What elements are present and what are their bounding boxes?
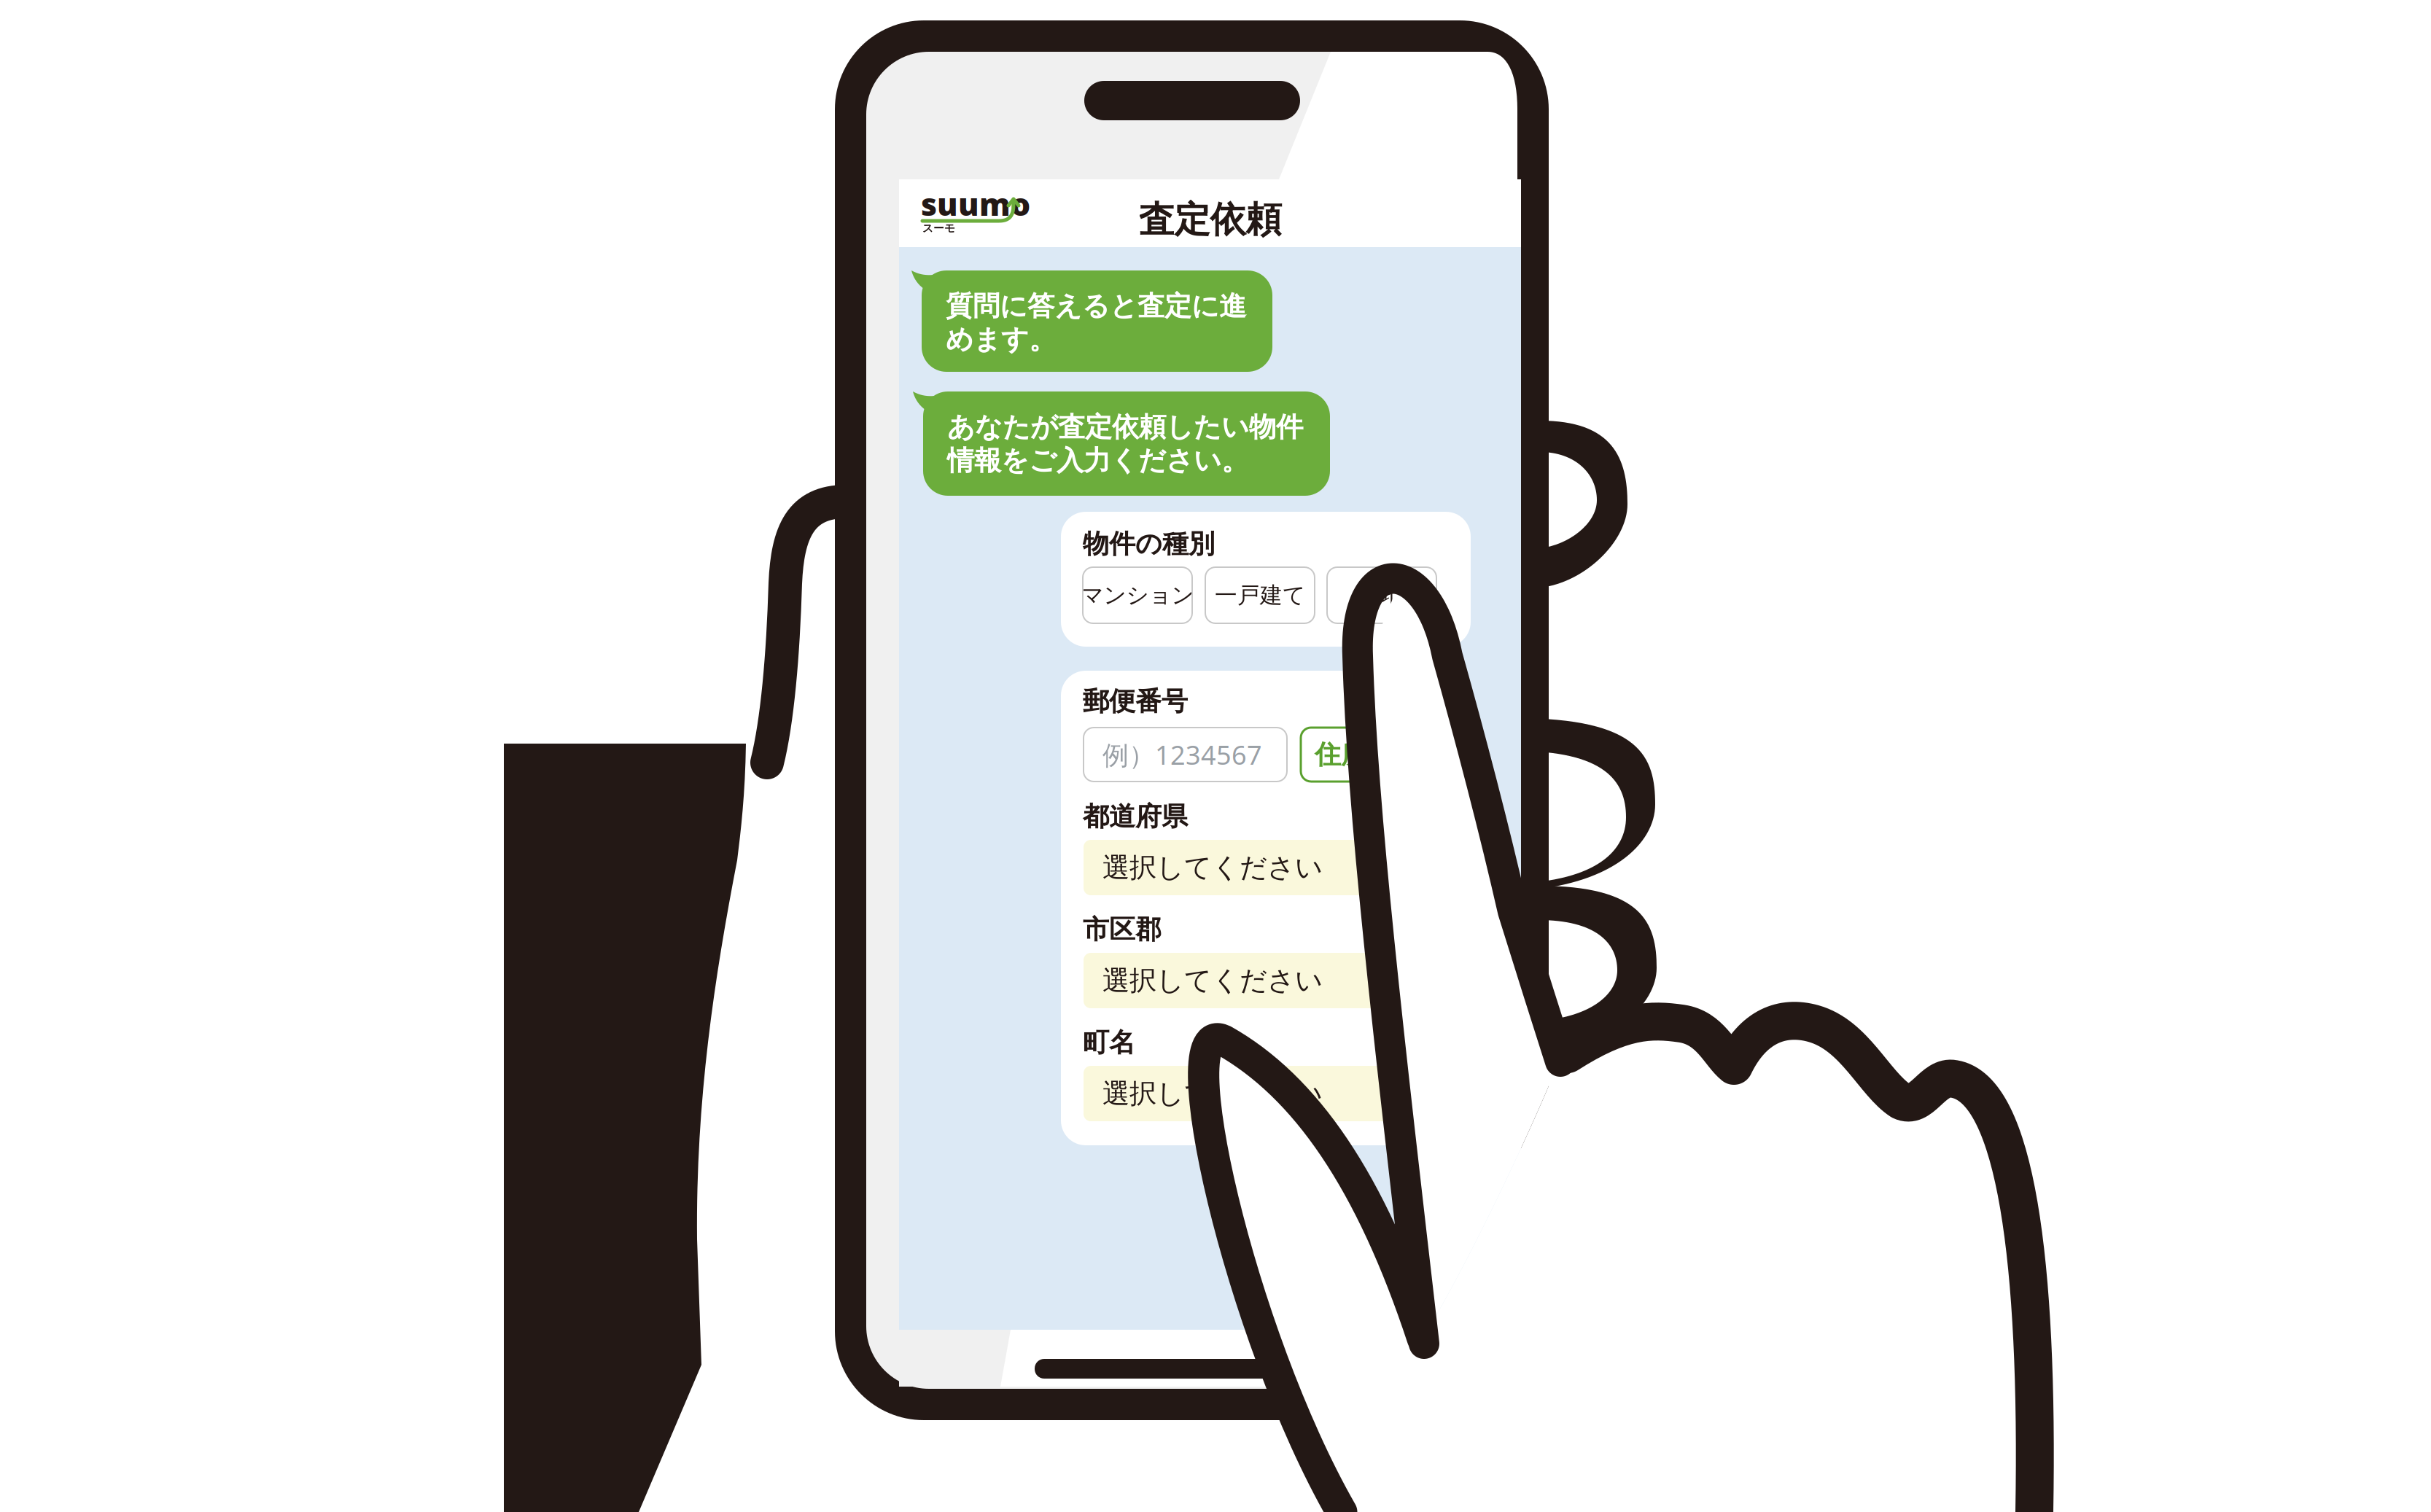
staticText: 住所検索 <box>1315 738 1420 771</box>
staticText: 郵便番号 <box>1083 685 1188 718</box>
button[interactable]: 選択してください <box>1084 1066 1448 1121</box>
button[interactable]: 住所検索 <box>1301 728 1434 782</box>
staticText: suumo <box>921 183 1030 224</box>
staticText: 選択してください <box>1102 1077 1323 1110</box>
staticText: 例）1234567 <box>1102 737 1262 772</box>
staticText: 一戸建て <box>1215 582 1305 609</box>
button[interactable]: 一戸建て <box>1205 567 1315 623</box>
staticText: 都道府県 <box>1083 800 1188 833</box>
staticText: 市区郡 <box>1083 913 1162 946</box>
button[interactable]: 選択してください <box>1084 953 1448 1008</box>
staticText: 選択してください <box>1102 964 1323 997</box>
staticText: 査定依頼 <box>1139 198 1281 242</box>
staticText: 土地 <box>1359 582 1404 609</box>
staticText: 町名 <box>1083 1026 1135 1059</box>
button[interactable]: SUUMO <box>922 198 1032 235</box>
button[interactable]: 選択してください <box>1084 840 1448 895</box>
staticText: マンション <box>1081 582 1194 609</box>
staticText: 物件の種別 <box>1083 528 1215 560</box>
staticText: 質問に答えると査定に進めます。 <box>946 289 1246 356</box>
button[interactable]: 土地 <box>1327 567 1436 623</box>
staticText: スーモ <box>922 222 955 235</box>
staticText: あなたが査定依頼したい物件情報をご入力ください。 <box>947 410 1303 477</box>
staticText: 選択してください <box>1102 851 1323 884</box>
button[interactable]: マンション <box>1083 567 1192 623</box>
